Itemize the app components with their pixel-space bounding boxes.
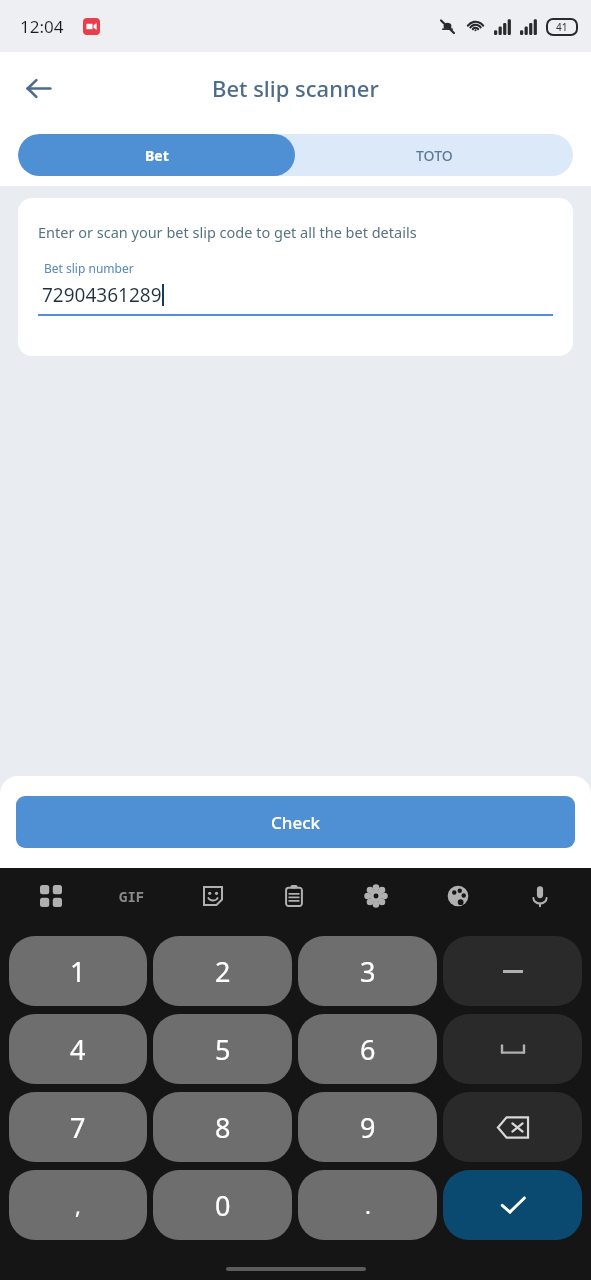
staticText: Check [271, 811, 321, 834]
staticText: TOTO [416, 146, 453, 165]
staticText: 1 [70, 953, 86, 990]
button[interactable]: sticker [172, 868, 253, 924]
staticText: 2 [215, 953, 231, 990]
staticText: 3 [360, 953, 376, 990]
button[interactable]: 0 [153, 1170, 292, 1240]
staticText: 4 [70, 1031, 86, 1068]
staticText: Bet slip scanner [212, 73, 379, 103]
button[interactable]: . [298, 1170, 437, 1240]
button[interactable]: gif [91, 868, 172, 924]
staticText: 7 [70, 1109, 86, 1146]
staticText: 9 [360, 1109, 376, 1146]
button[interactable]: mic [499, 868, 581, 924]
staticText: . [365, 1190, 371, 1220]
button[interactable]: Backspace [443, 1092, 582, 1162]
staticText: 0 [215, 1187, 231, 1224]
staticText: 5 [215, 1031, 231, 1068]
button[interactable]: Space [443, 1014, 582, 1084]
button[interactable]: 6 [298, 1014, 437, 1084]
staticText: 12:04 [20, 15, 64, 38]
staticText: 72904361289 [42, 282, 162, 308]
button[interactable]: , [9, 1170, 147, 1240]
staticText: Enter or scan your bet slip code to get … [38, 222, 417, 242]
staticText: 6 [360, 1031, 376, 1068]
button[interactable]: palette [417, 868, 499, 924]
staticText: 8 [215, 1109, 231, 1146]
button[interactable]: clipboard [253, 868, 335, 924]
button[interactable]: 5 [153, 1014, 292, 1084]
button[interactable]: Check [16, 796, 575, 848]
button[interactable]: TOTO [295, 134, 573, 176]
button[interactable]: settings [335, 868, 417, 924]
button[interactable]: Enter [443, 1170, 582, 1240]
button[interactable]: Back [12, 62, 64, 114]
button[interactable]: grid [10, 868, 91, 924]
button[interactable]: 3 [298, 936, 437, 1006]
button[interactable]: Minus [443, 936, 582, 1006]
button[interactable]: 9 [298, 1092, 437, 1162]
button[interactable]: 8 [153, 1092, 292, 1162]
button[interactable]: Bet slip number [38, 260, 553, 316]
button[interactable]: 1 [9, 936, 147, 1006]
staticText: 41 [556, 20, 568, 34]
staticText: Bet [145, 146, 169, 165]
button[interactable]: 2 [153, 936, 292, 1006]
button[interactable]: 7 [9, 1092, 147, 1162]
staticText: GIF [119, 887, 145, 906]
staticText: , [75, 1190, 81, 1220]
button[interactable]: 4 [9, 1014, 147, 1084]
staticText: Bet slip number [44, 260, 134, 276]
button[interactable]: Bet [18, 134, 295, 176]
